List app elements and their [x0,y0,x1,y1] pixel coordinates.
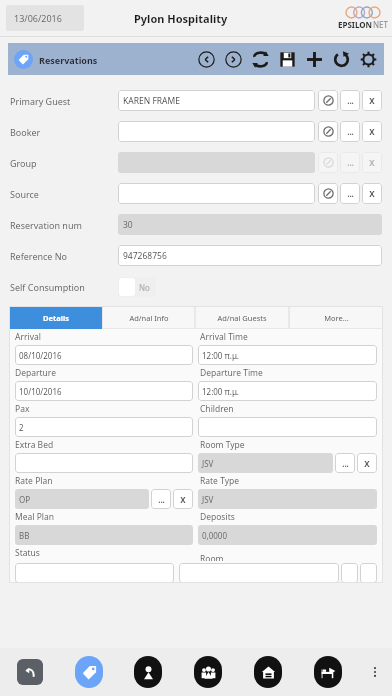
staticText: Departure [15,367,196,379]
staticText: Group [10,157,118,169]
button[interactable]: Refresh [250,49,270,69]
button[interactable]: Clear [362,121,382,142]
button[interactable]: Save [277,49,297,69]
button[interactable]: Edit [318,121,338,142]
staticText: NET [373,19,388,30]
button[interactable]: KAREN FRAME [118,90,315,111]
button[interactable]: More options [151,489,171,509]
staticText: 08/10/2016 [19,350,62,361]
staticText: Details [43,313,69,323]
button[interactable]: Home [238,648,298,696]
staticText: ... [158,494,165,505]
button[interactable]: More options [340,183,360,204]
staticText: More... [324,313,349,323]
button[interactable]: Clear [357,453,377,473]
staticText: 13/06/2016 [14,12,62,24]
staticText: Room [200,553,377,561]
button[interactable]: 12:00 π.μ. [198,345,377,365]
button[interactable]: Previous [196,49,216,69]
button[interactable]: More options [335,453,355,473]
staticText: X [369,126,375,137]
button[interactable]: Clear [362,152,382,173]
button[interactable]: Clear [173,489,193,509]
staticText: 12:00 π.μ. [202,386,239,397]
button[interactable]: 10/10/2016 [15,381,193,401]
staticText: Status [15,547,196,559]
staticText: BB [19,530,30,541]
button[interactable] [15,563,174,583]
button[interactable]: 0,0000 [198,525,377,545]
staticText: ... [347,95,354,106]
button[interactable]: No [118,277,156,297]
button[interactable]: Edit [318,90,338,111]
button[interactable]: More options [341,563,358,583]
staticText: 10/10/2016 [19,386,62,397]
button[interactable] [118,121,315,142]
button[interactable]: Reservations [14,50,98,69]
staticText: Rate Plan [15,475,196,487]
staticText: 0,0000 [202,530,228,541]
button[interactable]: Settings [358,49,378,69]
button[interactable]: JSV [198,489,377,509]
staticText: Room Type [200,439,377,451]
button[interactable]: 947268756 [118,245,382,266]
button[interactable] [15,453,193,473]
staticText: X [369,188,375,199]
button[interactable]: 12:00 π.μ. [198,381,377,401]
staticText: X [369,157,375,168]
button[interactable]: Add [304,49,324,69]
staticText: ... [347,188,354,199]
button[interactable]: More options [340,152,360,173]
button[interactable]: Edit [318,152,338,173]
staticText: EPSILON [338,19,373,30]
button[interactable]: More options [340,121,360,142]
button[interactable]: Ad/nal Info [102,306,195,329]
button[interactable]: Clear [362,183,382,204]
staticText: X [369,95,375,106]
button[interactable]: 2 [15,417,193,437]
button[interactable]: BB [15,525,193,545]
staticText: Reservations [39,54,98,66]
button[interactable]: More [358,648,392,696]
staticText: JSV [202,458,214,469]
staticText: Ad/nal Guests [217,313,267,323]
staticText: Arrival [15,331,196,343]
staticText: X [364,458,370,469]
staticText: Reservation num [10,219,118,231]
button[interactable]: OP [15,489,149,509]
button[interactable]: Rooms [298,648,358,696]
staticText: Self Consumption [10,281,118,293]
button[interactable] [179,563,339,583]
staticText: 12:00 π.μ. [202,350,239,361]
button[interactable]: Reload [331,49,351,69]
staticText: Pax [15,403,196,415]
staticText: Meal Plan [15,511,196,523]
button[interactable]: 08/10/2016 [15,345,193,365]
button[interactable]: Clear [360,563,377,583]
button[interactable]: 30 [118,214,382,235]
button[interactable] [118,183,315,204]
button[interactable]: Next [223,49,243,69]
button[interactable]: Edit [318,183,338,204]
button[interactable]: Back [0,648,59,696]
button[interactable]: More... [289,306,383,329]
button[interactable]: Ad/nal Guests [195,306,289,329]
staticText: Deposits [200,511,377,523]
button[interactable] [198,417,377,437]
button[interactable]: 13/06/2016 [6,5,84,31]
button[interactable]: Details [9,306,102,329]
button[interactable]: Clear [362,90,382,111]
button[interactable]: Reservations [59,648,118,696]
button[interactable]: JSV [198,453,333,473]
staticText: Arrival Time [200,331,377,343]
staticText: 2 [19,422,24,433]
button[interactable]: More options [340,90,360,111]
button[interactable]: Groups [178,648,238,696]
staticText: Ad/nal Info [129,313,169,323]
button[interactable]: Guest [118,648,178,696]
staticText: Primary Guest [10,95,118,107]
staticText: 947268756 [123,250,167,262]
staticText: ... [342,458,349,469]
staticText: ... [347,126,354,137]
